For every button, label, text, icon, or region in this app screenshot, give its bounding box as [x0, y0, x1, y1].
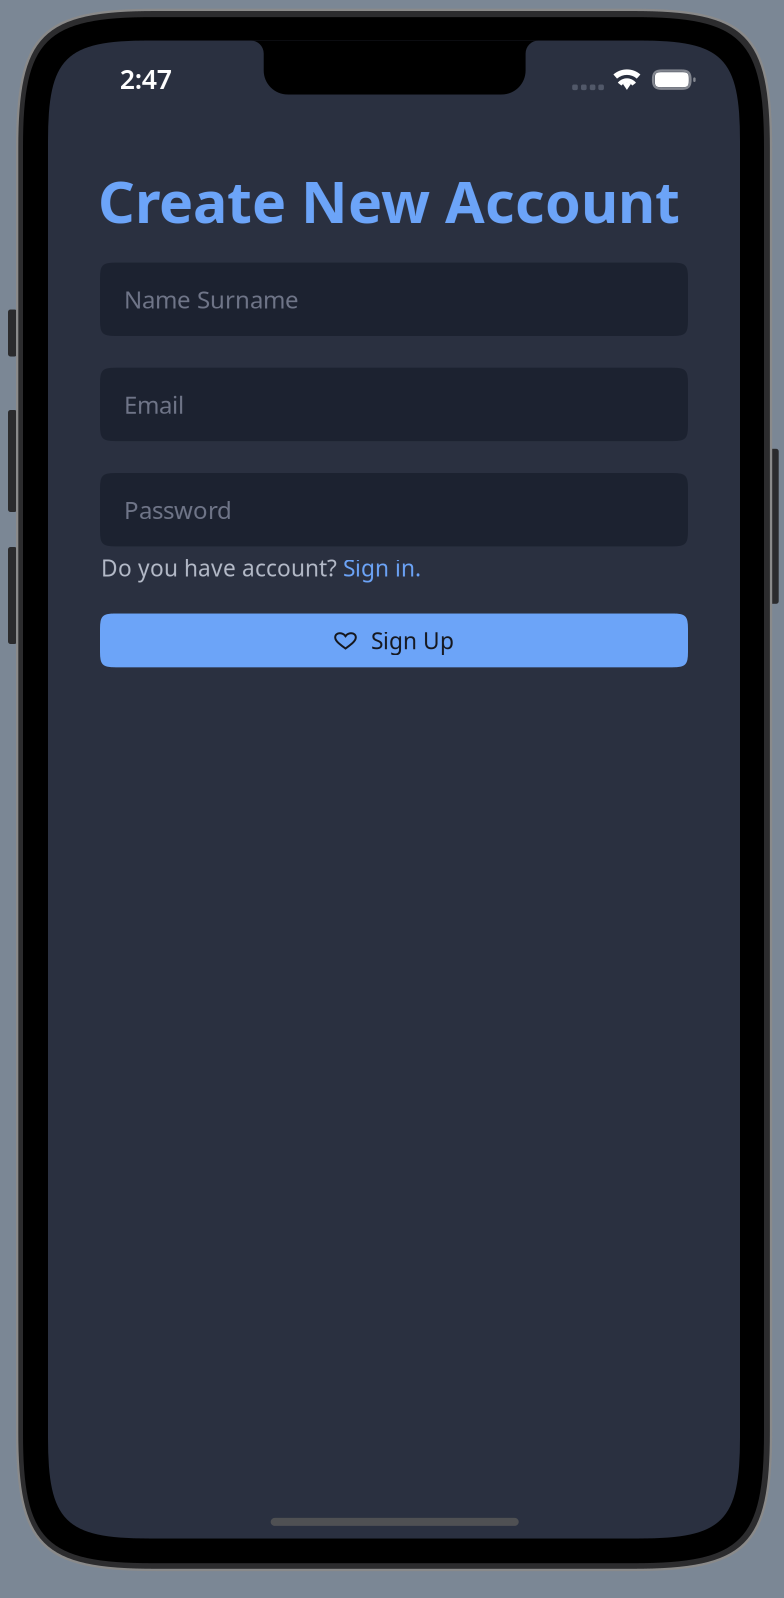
- staticText: Sign in.: [343, 553, 421, 583]
- staticText: Create New Account: [98, 163, 680, 239]
- button[interactable]: Sign Up: [100, 613, 688, 667]
- staticText: Sign Up: [371, 625, 454, 655]
- staticText: Email: [124, 388, 184, 420]
- staticText: 2:47: [120, 61, 172, 96]
- staticText: Password: [124, 494, 232, 526]
- button[interactable]: Sign in.: [343, 553, 421, 583]
- button[interactable]: Password: [100, 473, 688, 546]
- staticText: Name Surname: [124, 283, 299, 315]
- button[interactable]: Email: [100, 368, 688, 441]
- staticText: Do you have account?: [101, 553, 343, 583]
- button[interactable]: Name Surname: [100, 263, 688, 336]
